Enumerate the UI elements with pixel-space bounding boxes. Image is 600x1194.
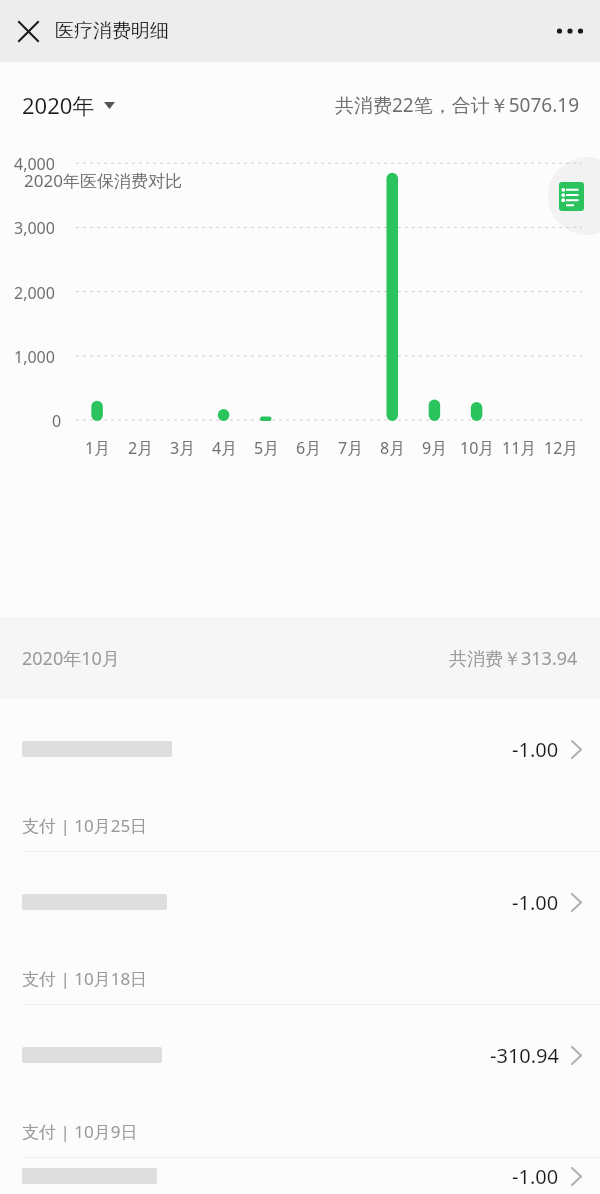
staticText: 0 — [52, 410, 62, 432]
staticText: 7月 — [338, 437, 364, 459]
staticText: 3,000 — [14, 217, 55, 239]
staticText: -1.00 — [512, 736, 559, 763]
staticText: 2020年医保消费对比 — [24, 169, 182, 192]
staticText: 支付 | 10月18日 — [22, 967, 148, 990]
staticText: 2,000 — [14, 282, 55, 304]
staticText: 2020年 — [22, 90, 95, 120]
staticText: 2020年10月 — [22, 646, 120, 671]
staticText: 6月 — [296, 437, 322, 459]
button[interactable]: Close — [4, 7, 52, 55]
button[interactable]: More options — [546, 7, 594, 55]
staticText: 共消费22笔，合计￥5076.19 — [335, 92, 580, 118]
staticText: 医疗消费明细 — [55, 19, 169, 43]
staticText: 3月 — [170, 437, 196, 459]
staticText: 1,000 — [14, 346, 55, 368]
staticText: -310.94 — [490, 1042, 559, 1069]
staticText: 8月 — [380, 437, 406, 459]
staticText: 12月 — [544, 437, 579, 459]
staticText: -1.00 — [512, 1163, 559, 1190]
staticText: 9月 — [422, 437, 448, 459]
button[interactable]: Bill list — [548, 157, 600, 235]
staticText: 4月 — [212, 437, 238, 459]
button[interactable]: -1.00 — [0, 852, 600, 1005]
staticText: 支付 | 10月9日 — [22, 1120, 138, 1143]
staticText: 支付 | 10月25日 — [22, 814, 148, 837]
staticText: 11月 — [502, 437, 537, 459]
staticText: 5月 — [254, 437, 280, 459]
button[interactable]: 2020年 — [18, 86, 119, 124]
button[interactable]: -1.00 — [0, 699, 600, 852]
staticText: 1月 — [85, 437, 111, 459]
staticText: 10月 — [460, 437, 495, 459]
button[interactable]: -1.00 — [0, 1158, 600, 1194]
staticText: 4,000 — [14, 153, 55, 175]
staticText: -1.00 — [512, 889, 559, 916]
staticText: 2月 — [128, 437, 154, 459]
staticText: 共消费￥313.94 — [449, 646, 578, 671]
button[interactable]: -310.94 — [0, 1005, 600, 1158]
